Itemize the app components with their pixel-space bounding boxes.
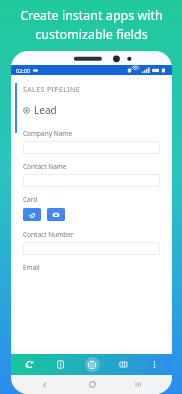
button[interactable]: Modules bbox=[79, 354, 105, 375]
staticText: Email bbox=[23, 263, 40, 272]
button[interactable]: Take photo bbox=[47, 208, 65, 221]
button[interactable]: Home bbox=[80, 375, 104, 394]
button[interactable]: Recent apps bbox=[126, 375, 150, 394]
button[interactable]: More options bbox=[141, 354, 167, 375]
button[interactable]: Back bbox=[33, 375, 57, 394]
staticText: Create instant apps with bbox=[20, 7, 163, 24]
staticText: Contact Name bbox=[23, 162, 67, 171]
staticText: 02:00 bbox=[16, 67, 31, 74]
staticText: Lead bbox=[34, 103, 57, 117]
staticText: customizable fields bbox=[35, 26, 148, 43]
button[interactable] bbox=[23, 242, 160, 255]
staticText: Contact Number bbox=[23, 230, 74, 239]
button[interactable] bbox=[23, 174, 160, 187]
button[interactable]: Attach file bbox=[23, 208, 41, 221]
staticText: Company Name bbox=[23, 129, 73, 138]
button[interactable]: Reports bbox=[47, 354, 73, 375]
staticText: Card bbox=[23, 195, 38, 204]
button[interactable]: Sync bbox=[16, 354, 42, 375]
button[interactable]: Calendar bbox=[110, 354, 136, 375]
staticText: SALES PIPELINE bbox=[23, 85, 81, 95]
button[interactable] bbox=[23, 141, 160, 154]
